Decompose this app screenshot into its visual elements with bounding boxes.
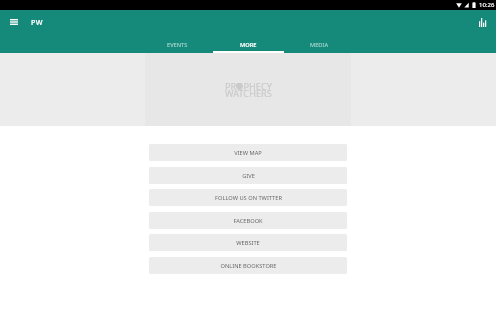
- button[interactable]: MEDIA: [284, 38, 355, 53]
- staticText: PROPHECY: [225, 80, 272, 93]
- button[interactable]: EVENTS: [142, 38, 213, 53]
- staticText: 10:26: [479, 1, 495, 9]
- staticText: VIEW MAP: [234, 149, 262, 157]
- button[interactable]: GIVE: [149, 167, 347, 184]
- staticText: EVENTS: [167, 41, 188, 49]
- staticText: ONLINE BOOKSTORE: [220, 262, 277, 270]
- button[interactable]: VIEW MAP: [149, 144, 347, 161]
- button[interactable]: Open navigation menu: [4, 12, 24, 32]
- staticText: FOLLOW US ON TWITTER: [215, 194, 282, 202]
- staticText: MORE: [240, 41, 257, 49]
- staticText: PW: [31, 17, 43, 27]
- staticText: GIVE: [242, 172, 255, 180]
- staticText: WEBSITE: [236, 239, 260, 247]
- button[interactable]: ONLINE BOOKSTORE: [149, 257, 347, 274]
- staticText: FACEBOOK: [233, 217, 263, 225]
- button[interactable]: FACEBOOK: [149, 212, 347, 229]
- button[interactable]: WEBSITE: [149, 234, 347, 251]
- button[interactable]: FOLLOW US ON TWITTER: [149, 189, 347, 206]
- staticText: WATCHERS: [225, 87, 272, 100]
- button[interactable]: Statistics: [473, 12, 493, 32]
- button[interactable]: MORE: [213, 38, 284, 53]
- staticText: MEDIA: [310, 41, 329, 49]
